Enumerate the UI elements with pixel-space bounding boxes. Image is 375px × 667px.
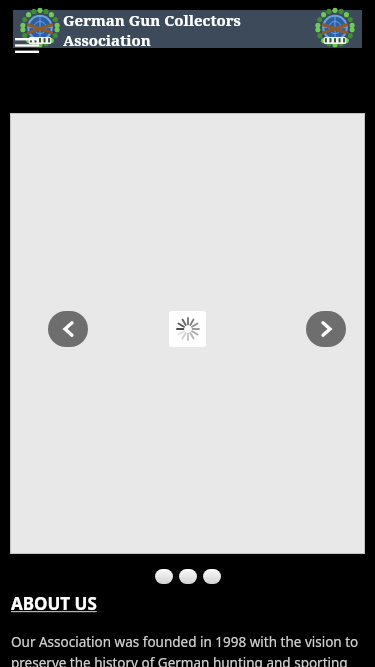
button[interactable]: ABOUT US: [11, 592, 97, 615]
button[interactable]: Previous slide: [48, 311, 88, 347]
button[interactable]: Go to slide 3: [203, 569, 221, 584]
button[interactable]: Go to slide 2: [179, 569, 197, 584]
button[interactable]: Go to slide 1: [155, 569, 173, 584]
staticText: Our Association was founded in 1998 with…: [11, 633, 364, 667]
button[interactable]: Open navigation menu: [12, 33, 42, 57]
button[interactable]: Next slide: [306, 311, 346, 347]
staticText: German Gun Collectors Association: [63, 10, 312, 48]
button[interactable]: German Gun Collectors Association: [13, 10, 362, 48]
